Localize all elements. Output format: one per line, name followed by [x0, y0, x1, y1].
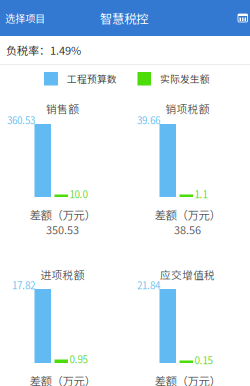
staticText: 差额（万元）: [29, 372, 95, 386]
staticText: 1.1: [194, 187, 207, 201]
staticText: 350.53: [46, 222, 79, 237]
staticText: 差额（万元）: [154, 206, 220, 223]
staticText: 进项税额: [40, 267, 84, 282]
staticText: 10.0: [69, 187, 87, 201]
staticText: 0.15: [194, 353, 212, 367]
staticText: 实际发生额: [160, 71, 210, 86]
staticText: 17.82: [12, 278, 35, 292]
staticText: 0.95: [69, 352, 87, 366]
staticText: 智慧税控: [100, 9, 148, 27]
staticText: 360.53: [7, 113, 35, 127]
staticText: 销项税额: [165, 101, 209, 116]
staticText: 选择项目: [5, 11, 45, 25]
button[interactable]: 选择项目: [1, 0, 49, 36]
button[interactable]: 智慧税控: [89, 0, 159, 36]
staticText: 工程预算数: [67, 71, 117, 86]
staticText: 39.66: [137, 113, 160, 127]
button[interactable]: 选择日期: [228, 0, 250, 36]
staticText: 负税率：1.49%: [6, 42, 81, 58]
staticText: 应交增值税: [160, 267, 215, 282]
staticText: 差额（万元）: [29, 206, 95, 223]
staticText: 差额（万元）: [154, 372, 220, 386]
staticText: 销售额: [46, 101, 79, 116]
staticText: 38.56: [174, 222, 201, 237]
staticText: 21.84: [137, 278, 160, 292]
